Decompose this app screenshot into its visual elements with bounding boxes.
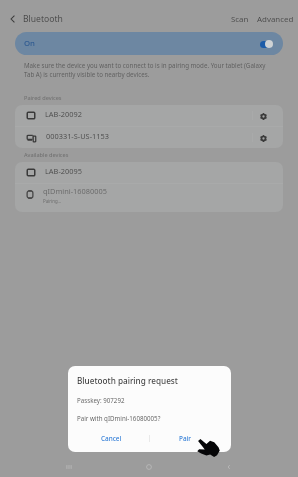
staticText: qIDmini-16080005 bbox=[43, 186, 107, 196]
button[interactable]: Scan bbox=[227, 9, 253, 30]
button[interactable]: Cancel bbox=[68, 427, 149, 449]
staticText: Paired devices bbox=[24, 94, 62, 102]
staticText: Available devices bbox=[24, 151, 69, 159]
staticText: Pairing... bbox=[43, 198, 62, 204]
button[interactable]: Home bbox=[138, 457, 160, 477]
button[interactable]: Advanced bbox=[253, 9, 298, 30]
staticText: Pair with qIDmini-16080005? bbox=[77, 414, 161, 422]
staticText: Scan bbox=[231, 14, 249, 25]
button[interactable]: LAB-20092 bbox=[15, 105, 283, 126]
button[interactable]: LAB-20095 bbox=[15, 162, 283, 183]
staticText: LAB-20095 bbox=[45, 166, 82, 176]
staticText: Cancel bbox=[101, 434, 122, 443]
button[interactable]: qIDmini-16080005 bbox=[15, 184, 283, 212]
staticText: Pair bbox=[179, 434, 191, 443]
staticText: LAB-20092 bbox=[45, 109, 82, 119]
staticText: On bbox=[24, 38, 36, 49]
staticText: 000331-S-US-1153 bbox=[46, 131, 109, 141]
button[interactable]: Device settings bbox=[253, 106, 273, 126]
staticText: Advanced bbox=[257, 14, 294, 25]
staticText: Bluetooth pairing request bbox=[77, 375, 178, 386]
button[interactable]: Navigate up bbox=[4, 10, 22, 28]
staticText: Make sure the device you want to connect… bbox=[24, 61, 276, 79]
staticText: Bluetooth bbox=[23, 13, 63, 25]
button[interactable]: Device settings bbox=[253, 128, 273, 148]
button[interactable]: 000331-S-US-1153 bbox=[15, 127, 283, 148]
button[interactable]: On bbox=[15, 32, 283, 55]
button[interactable]: Pair bbox=[150, 427, 231, 449]
staticText: Passkey: 907292 bbox=[77, 396, 125, 404]
